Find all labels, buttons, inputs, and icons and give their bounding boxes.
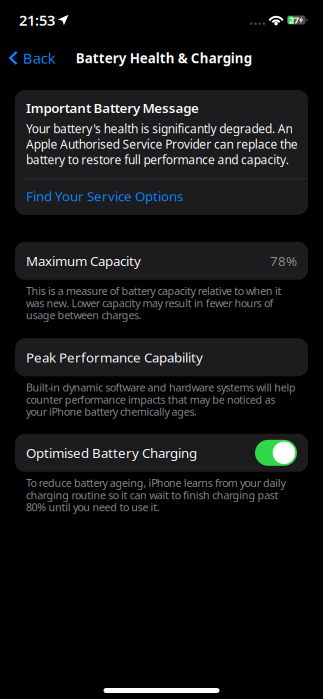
staticText: To reduce battery ageing, iPhone learns … xyxy=(26,476,285,514)
staticText: Battery Health & Charging xyxy=(76,49,252,67)
staticText: This is a measure of battery capacity re… xyxy=(26,284,282,322)
staticText: 21:53 xyxy=(19,10,55,30)
staticText: Back xyxy=(23,48,56,68)
staticText: Maximum Capacity xyxy=(26,252,141,270)
staticText: Find Your Service Options xyxy=(26,187,183,205)
button[interactable]: Find Your Service Options xyxy=(15,179,308,215)
staticText: 27 xyxy=(289,14,299,26)
staticText: Your battery's health is significantly d… xyxy=(26,121,298,167)
button[interactable]: Optimised Battery Charging xyxy=(255,440,297,466)
staticText: 78% xyxy=(270,252,297,270)
staticText: Built-in dynamic software and hardware s… xyxy=(26,380,296,419)
button[interactable]: Back xyxy=(0,41,62,75)
staticText: Peak Performance Capability xyxy=(26,348,203,366)
staticText: Optimised Battery Charging xyxy=(26,444,197,462)
staticText: Important Battery Message xyxy=(26,99,199,117)
